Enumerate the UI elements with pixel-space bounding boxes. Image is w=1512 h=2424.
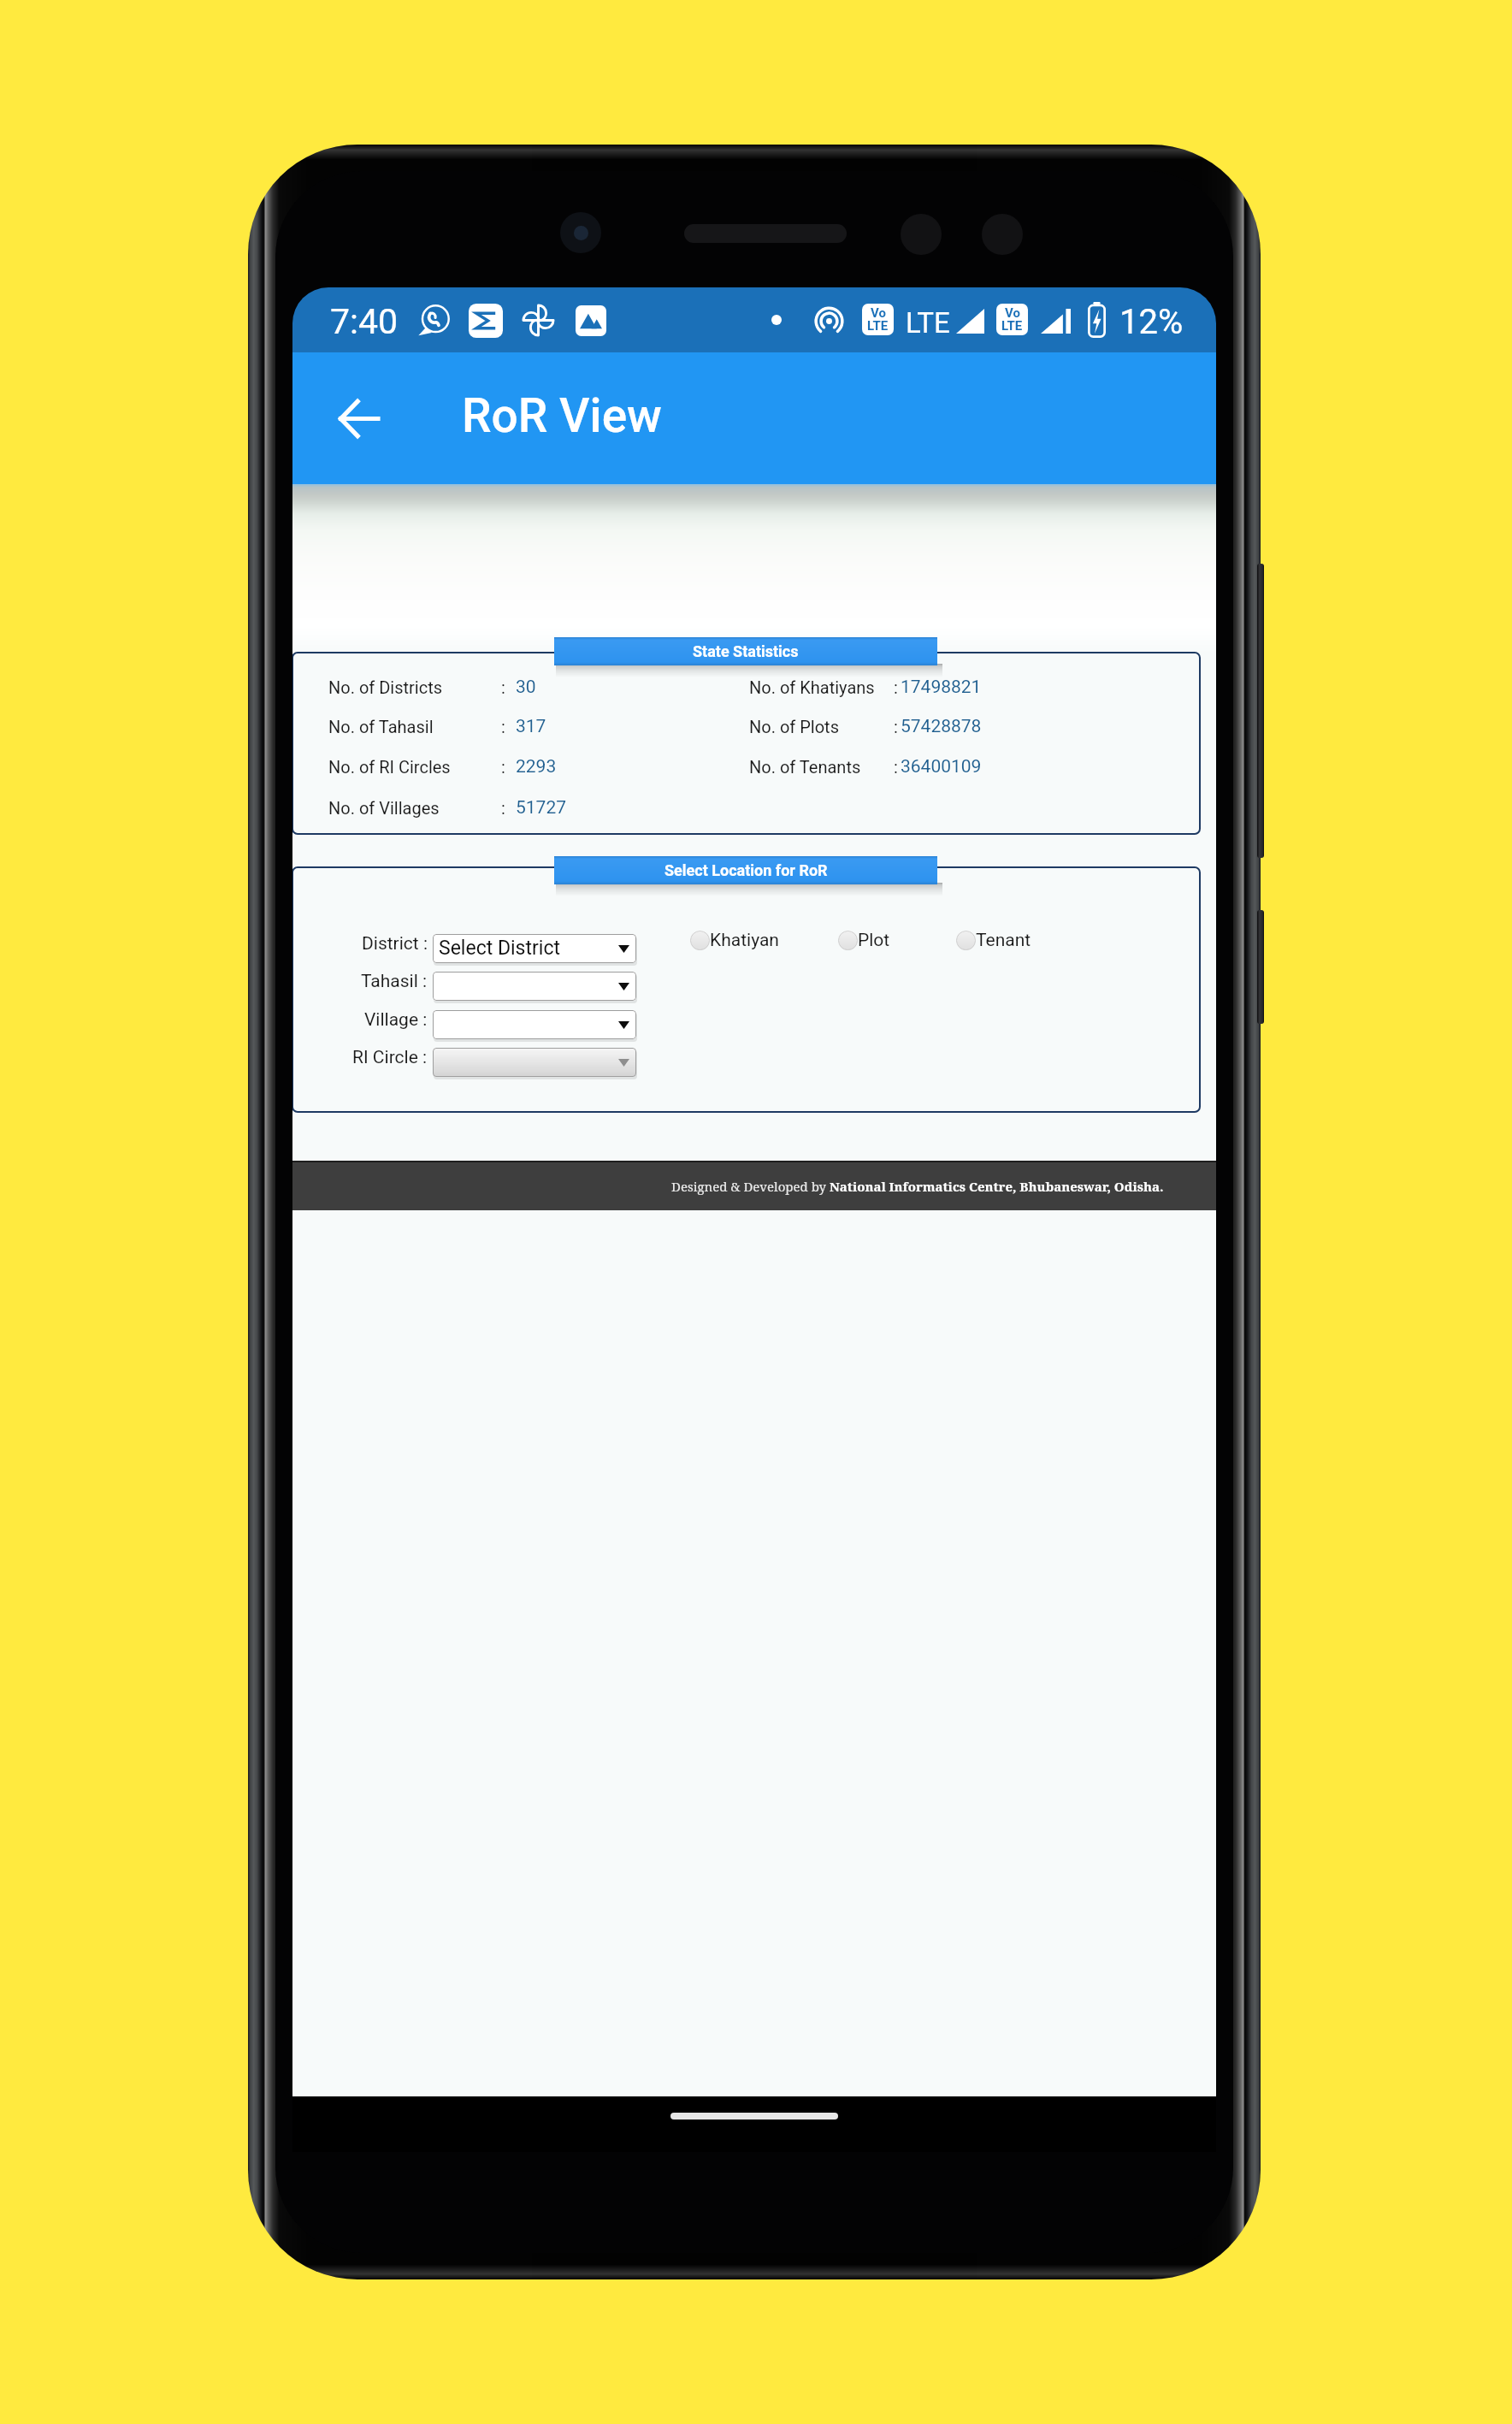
staticText: Select Location for RoR bbox=[664, 861, 828, 879]
staticText: 7:40 bbox=[330, 301, 399, 342]
staticText: : bbox=[501, 677, 505, 697]
button[interactable]: Plot bbox=[838, 930, 890, 951]
staticText: 57428878 bbox=[901, 716, 982, 737]
button[interactable] bbox=[433, 1010, 636, 1039]
staticText: Tahasil : bbox=[361, 971, 428, 992]
staticText: : bbox=[501, 757, 505, 777]
staticText: Designed & Developed by bbox=[671, 1178, 830, 1195]
staticText: 51727 bbox=[516, 797, 567, 819]
staticText: Village : bbox=[364, 1009, 428, 1031]
staticText: Plot bbox=[858, 930, 890, 951]
button[interactable]: Navigate up bbox=[320, 380, 397, 457]
staticText: 30 bbox=[516, 677, 536, 698]
staticText: : bbox=[501, 798, 505, 818]
staticText: Vo bbox=[871, 305, 886, 321]
staticText: Vo bbox=[1005, 305, 1020, 321]
staticText: 2293 bbox=[516, 756, 557, 777]
button[interactable]: Tenant bbox=[956, 930, 1031, 951]
staticText: No. of Khatiyans bbox=[749, 677, 875, 697]
staticText: LTE bbox=[1001, 318, 1023, 334]
staticText: No. of Tenants bbox=[749, 757, 861, 777]
staticText: No. of RI Circles bbox=[328, 757, 451, 777]
staticText: No. of Districts bbox=[328, 677, 443, 697]
staticText: 36400109 bbox=[901, 756, 982, 777]
staticText: No. of Tahasil bbox=[328, 717, 434, 736]
staticText: : bbox=[894, 677, 898, 697]
staticText: State Statistics bbox=[693, 642, 799, 660]
staticText: : bbox=[894, 717, 898, 736]
staticText: 12% bbox=[1119, 302, 1184, 342]
staticText: RoR View bbox=[462, 388, 662, 443]
staticText: LTE bbox=[906, 306, 950, 340]
staticText: 317 bbox=[516, 716, 546, 737]
staticText: LTE bbox=[867, 318, 889, 334]
staticText: : bbox=[501, 717, 505, 736]
staticText: No. of Plots bbox=[749, 717, 839, 736]
button[interactable]: Select District bbox=[433, 934, 636, 963]
button[interactable] bbox=[433, 1048, 636, 1077]
staticText: Khatiyan bbox=[710, 930, 779, 951]
staticText: 17498821 bbox=[901, 677, 982, 698]
button[interactable]: Khatiyan bbox=[690, 930, 779, 951]
staticText: Select District bbox=[439, 937, 560, 960]
staticText: National Informatics Centre, Bhubaneswar… bbox=[830, 1178, 1164, 1195]
staticText: : bbox=[894, 757, 898, 777]
staticText: No. of Villages bbox=[328, 798, 440, 818]
button[interactable] bbox=[433, 972, 636, 1001]
staticText: RI Circle : bbox=[352, 1047, 428, 1068]
staticText: Tenant bbox=[976, 930, 1031, 951]
staticText: District : bbox=[362, 933, 428, 955]
